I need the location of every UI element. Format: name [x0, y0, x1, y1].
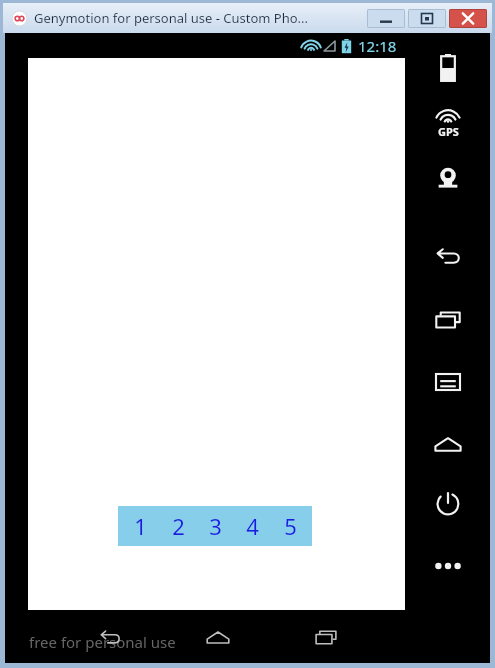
button[interactable]: 1: [125, 506, 155, 546]
button[interactable]: Minimize: [367, 9, 405, 28]
staticText: 1: [134, 511, 147, 541]
button[interactable]: 5: [275, 506, 305, 546]
button[interactable]: Close: [449, 9, 487, 28]
staticText: 12:18: [358, 36, 397, 56]
staticText: 3: [209, 511, 222, 541]
button[interactable]: Recents: [418, 303, 478, 337]
button[interactable]: 3: [200, 506, 230, 546]
staticText: 2: [172, 511, 185, 541]
staticText: 4: [246, 511, 259, 541]
staticText: Genymotion for personal use - Custom Pho…: [34, 9, 309, 27]
button[interactable]: Back: [418, 239, 478, 273]
button[interactable]: Back: [83, 617, 137, 657]
button[interactable]: 2: [163, 506, 193, 546]
staticText: GPS: [438, 124, 459, 139]
button[interactable]: More: [418, 549, 478, 583]
staticText: free for personal use: [29, 632, 176, 652]
button[interactable]: Camera: [418, 161, 478, 195]
button[interactable]: Power: [418, 487, 478, 521]
staticText: 5: [284, 511, 297, 541]
button[interactable]: Recents: [299, 617, 353, 657]
button[interactable]: 1: [118, 506, 312, 546]
button[interactable]: Home: [418, 427, 478, 461]
button[interactable]: GPS: [418, 107, 478, 141]
button[interactable]: Maximize: [408, 9, 446, 28]
button[interactable]: Home: [191, 617, 245, 657]
button[interactable]: Menu: [418, 365, 478, 399]
button[interactable]: Battery: [418, 51, 478, 85]
button[interactable]: 4: [237, 506, 267, 546]
